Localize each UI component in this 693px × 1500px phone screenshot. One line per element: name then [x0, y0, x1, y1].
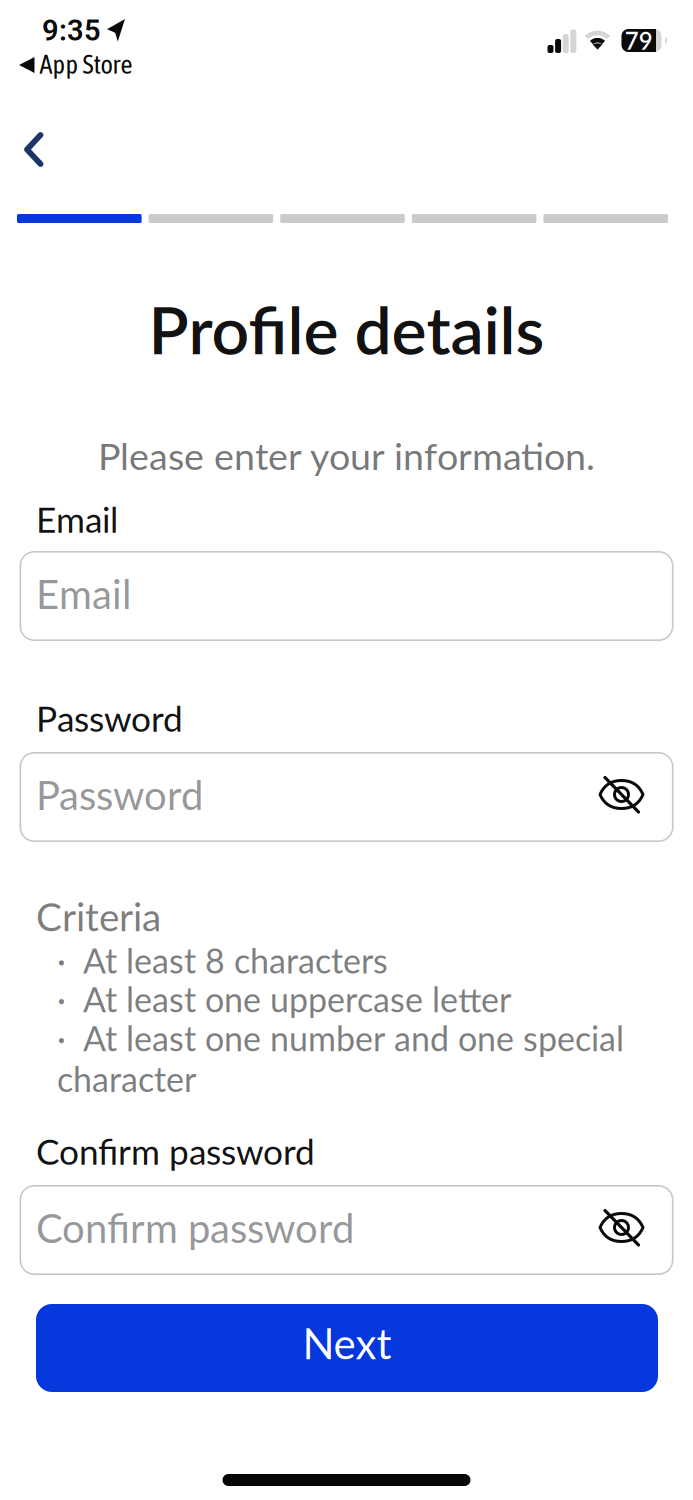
staticText: · At least one uppercase letter	[57, 979, 511, 1020]
staticText: Email	[36, 569, 131, 617]
staticText: Next	[302, 1318, 391, 1368]
button[interactable]: Show password	[598, 779, 644, 810]
staticText: App Store	[39, 49, 132, 79]
staticText: Email	[36, 498, 118, 540]
staticText: · At least one number and one special ch…	[57, 1018, 624, 1099]
staticText: 79	[625, 26, 653, 55]
staticText: Please enter your information.	[98, 433, 595, 478]
button[interactable]: Next	[36, 1304, 658, 1392]
button[interactable]: Back to App Store	[19, 47, 132, 79]
button[interactable]: Confirm password text field	[19, 1185, 673, 1275]
button[interactable]: Back	[16, 124, 52, 175]
staticText: Password	[36, 697, 183, 739]
staticText: Password	[36, 770, 203, 818]
staticText: 9:35	[42, 13, 101, 48]
staticText: Confirm password	[36, 1203, 354, 1251]
staticText: · At least 8 characters	[57, 940, 388, 981]
button[interactable]: Password text field	[19, 752, 673, 842]
button[interactable]: Email text field	[19, 551, 673, 641]
button[interactable]: Show password	[598, 1212, 644, 1243]
staticText: Confirm password	[36, 1130, 315, 1172]
staticText: Criteria	[36, 893, 161, 939]
staticText: Profile details	[148, 289, 544, 368]
